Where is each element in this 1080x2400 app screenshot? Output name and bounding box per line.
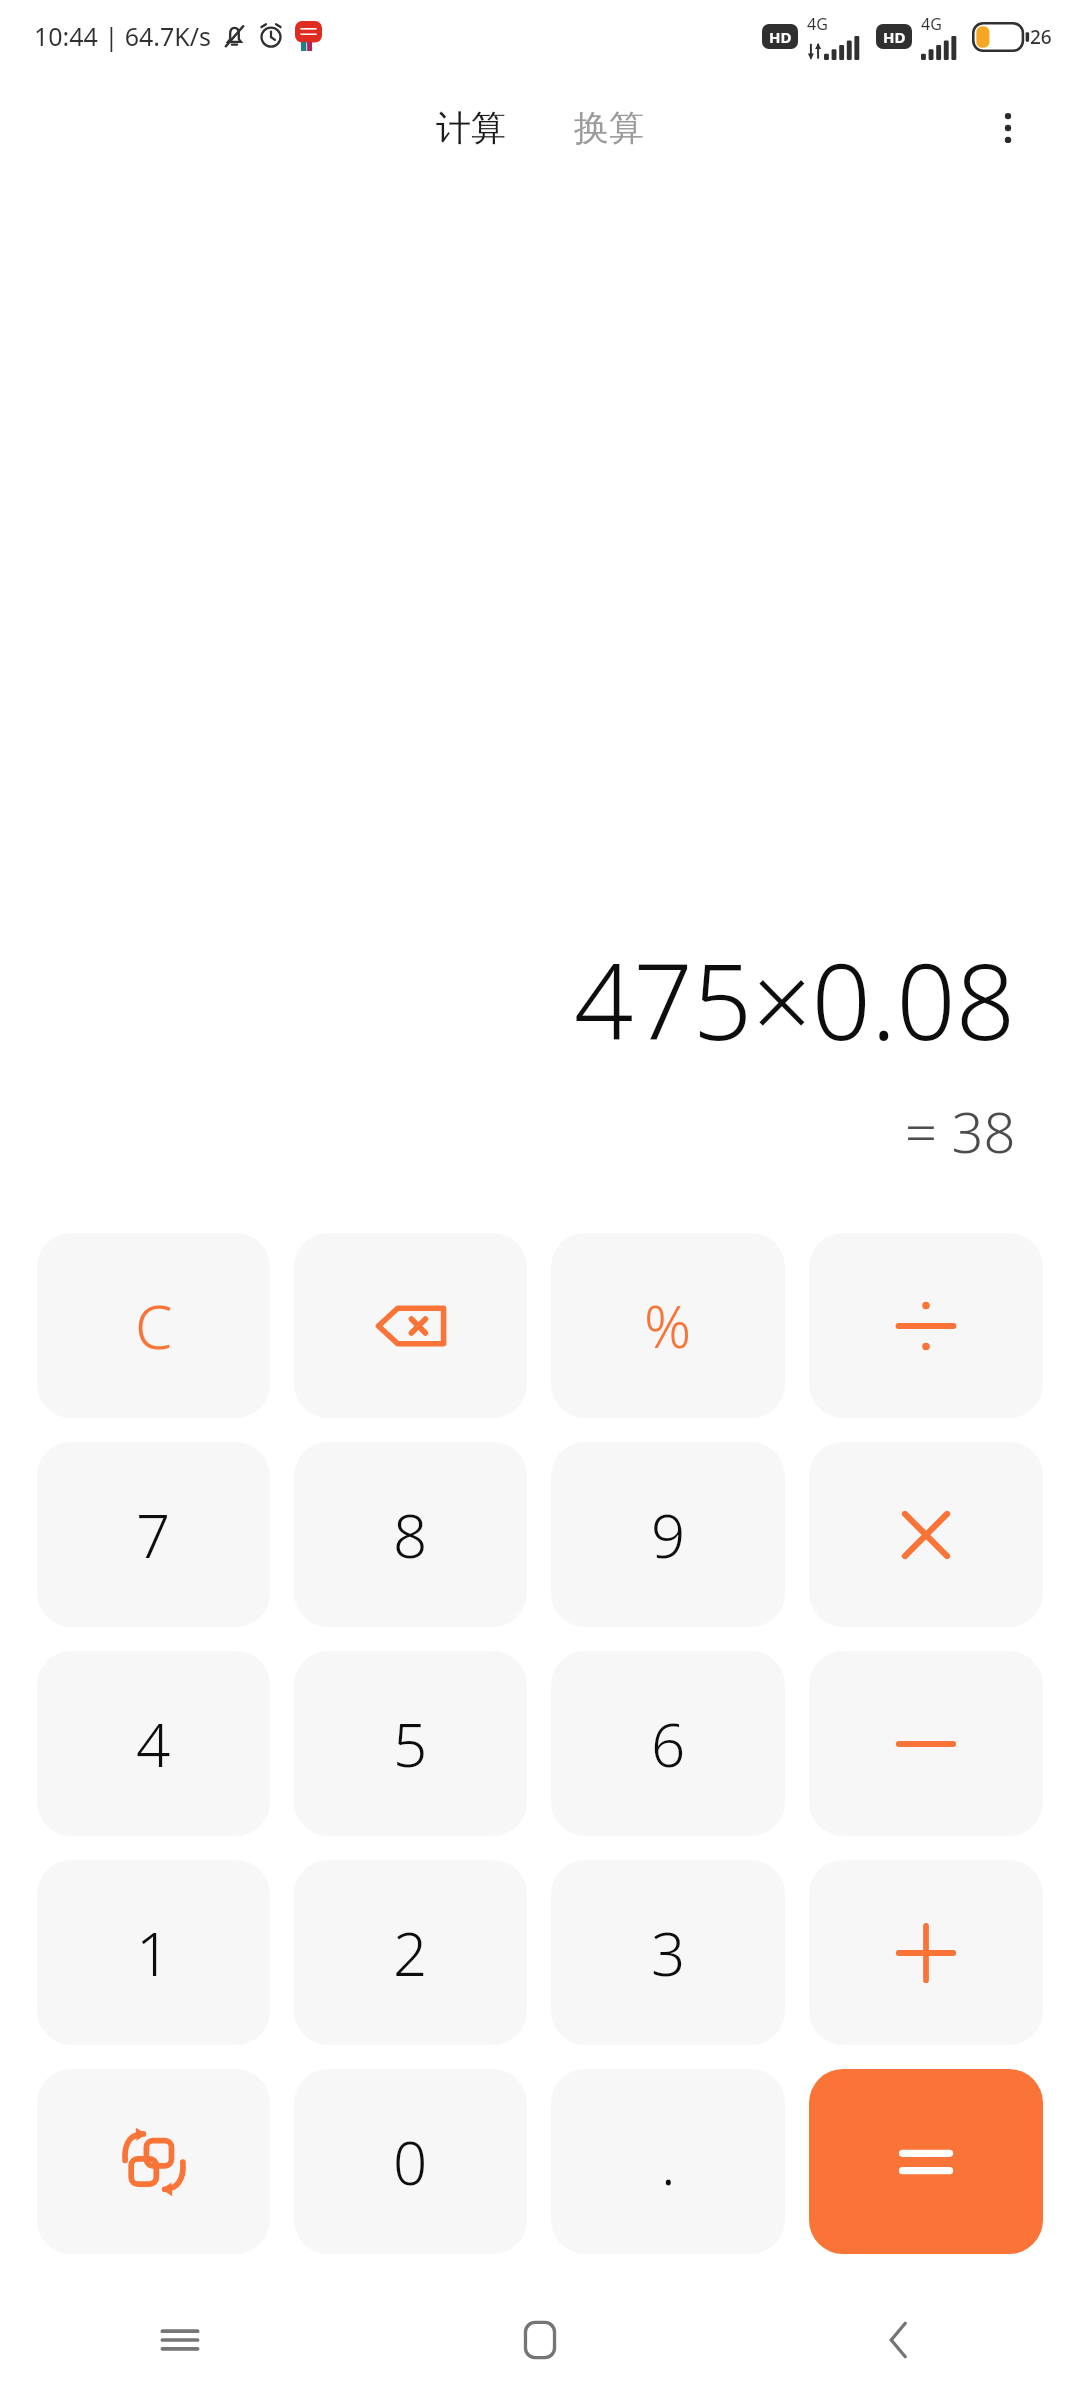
button[interactable]: Equals bbox=[809, 2069, 1043, 2254]
staticText: . bbox=[661, 2121, 676, 2203]
staticText: 7 bbox=[136, 1494, 171, 1576]
button[interactable]: 0 bbox=[294, 2069, 527, 2254]
button[interactable]: Convert units bbox=[37, 2069, 270, 2254]
staticText: 2 bbox=[393, 1912, 428, 1994]
button[interactable]: 5 bbox=[294, 1651, 527, 1836]
button[interactable]: 计算 bbox=[422, 98, 520, 158]
staticText: HD bbox=[769, 27, 792, 47]
staticText: C bbox=[135, 1285, 173, 1367]
button[interactable]: Home bbox=[360, 2280, 720, 2400]
staticText: 3 bbox=[651, 1912, 686, 1994]
staticText: 10:44 | 64.7K/s bbox=[34, 19, 212, 53]
staticText: 6 bbox=[651, 1703, 686, 1785]
button[interactable]: 7 bbox=[37, 1442, 270, 1627]
staticText: 换算 bbox=[574, 106, 644, 150]
staticText: 475×0.08 bbox=[574, 929, 1016, 1071]
staticText: 4 bbox=[136, 1703, 171, 1785]
button[interactable]: Plus bbox=[809, 1860, 1043, 2045]
button[interactable]: Multiply bbox=[809, 1442, 1043, 1627]
button[interactable]: More options bbox=[966, 86, 1050, 170]
staticText: HD bbox=[883, 27, 906, 47]
staticText: 0 bbox=[393, 2121, 428, 2203]
button[interactable]: Divide bbox=[809, 1233, 1043, 1418]
staticText: 4G bbox=[921, 13, 942, 35]
button[interactable]: C bbox=[37, 1233, 270, 1418]
button[interactable]: 2 bbox=[294, 1860, 527, 2045]
button[interactable]: Back bbox=[720, 2280, 1080, 2400]
staticText: 8 bbox=[393, 1494, 428, 1576]
button[interactable]: 换算 bbox=[560, 98, 658, 158]
button[interactable]: % bbox=[551, 1233, 785, 1418]
button[interactable]: 1 bbox=[37, 1860, 270, 2045]
staticText: 1 bbox=[136, 1912, 171, 1994]
staticText: 4G bbox=[807, 13, 828, 35]
button[interactable]: 4 bbox=[37, 1651, 270, 1836]
button[interactable]: Backspace bbox=[294, 1233, 527, 1418]
staticText: = 38 bbox=[905, 1093, 1016, 1169]
button[interactable]: Recents bbox=[0, 2280, 360, 2400]
staticText: 26 bbox=[1030, 24, 1052, 50]
button[interactable]: 8 bbox=[294, 1442, 527, 1627]
button[interactable]: 3 bbox=[551, 1860, 785, 2045]
staticText: 5 bbox=[393, 1703, 428, 1785]
staticText: 9 bbox=[651, 1494, 686, 1576]
button[interactable]: . bbox=[551, 2069, 785, 2254]
button[interactable]: 6 bbox=[551, 1651, 785, 1836]
button[interactable]: Minus bbox=[809, 1651, 1043, 1836]
staticText: % bbox=[644, 1286, 692, 1365]
button[interactable]: 9 bbox=[551, 1442, 785, 1627]
staticText: 计算 bbox=[436, 106, 506, 150]
